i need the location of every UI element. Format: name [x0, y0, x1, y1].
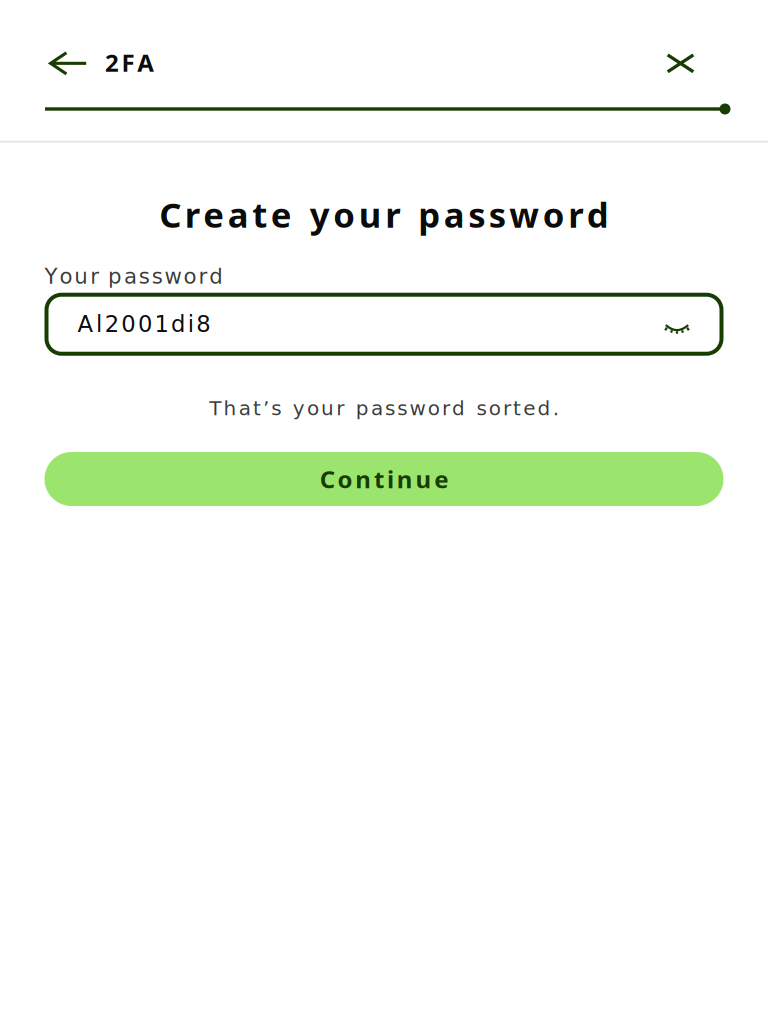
staticText: y [293, 397, 305, 420]
staticText: r [568, 191, 583, 238]
staticText: r [503, 397, 511, 420]
staticText: e [523, 397, 535, 420]
button[interactable]: Show password [650, 305, 689, 344]
staticText: p [108, 264, 122, 289]
staticText: s [476, 397, 486, 420]
staticText: 2 [105, 46, 119, 79]
staticText: r [185, 191, 200, 238]
staticText: e [203, 191, 224, 238]
staticText: d [537, 397, 550, 420]
staticText: r [198, 264, 207, 289]
staticText: h [223, 397, 236, 420]
staticText: n [397, 463, 413, 495]
staticText: e [434, 463, 448, 495]
staticText: 1 [154, 311, 168, 337]
staticText: p [418, 191, 440, 238]
staticText: t [253, 397, 261, 420]
staticText: 0 [121, 311, 135, 337]
staticText: a [124, 264, 137, 289]
staticText: F [122, 46, 135, 79]
staticText: A [137, 46, 154, 79]
staticText: w [509, 191, 539, 238]
staticText: a [228, 191, 249, 238]
staticText: u [321, 397, 334, 420]
staticText: r [336, 397, 344, 420]
staticText: u [415, 463, 431, 495]
staticText: s [397, 397, 407, 420]
staticText: o [543, 191, 565, 238]
staticText: r [442, 397, 450, 420]
staticText: d [587, 191, 609, 238]
staticText: l [96, 311, 102, 337]
staticText: . [553, 397, 559, 420]
staticText: o [183, 264, 196, 289]
staticText: d [209, 264, 223, 289]
staticText: e [271, 191, 292, 238]
staticText: w [409, 397, 425, 420]
staticText: o [333, 191, 355, 238]
staticText: u [359, 191, 382, 238]
staticText: i [387, 463, 394, 495]
staticText: o [428, 397, 440, 420]
staticText: 2 [105, 311, 119, 337]
staticText: p [356, 397, 369, 420]
staticText: d [171, 311, 185, 337]
staticText: t [374, 463, 384, 495]
staticText: n [355, 463, 371, 495]
button[interactable]: Back [49, 46, 97, 80]
staticText: T [209, 397, 221, 420]
staticText: u [74, 264, 88, 289]
button[interactable]: Close [656, 46, 695, 80]
staticText: a [444, 191, 465, 238]
staticText: s [271, 397, 281, 420]
staticText: t [252, 191, 267, 238]
staticText: s [489, 191, 506, 238]
staticText: ’ [263, 397, 269, 420]
staticText: o [337, 463, 352, 495]
staticText: A [77, 311, 93, 337]
staticText: s [152, 264, 163, 289]
staticText: s [139, 264, 150, 289]
staticText: C [159, 191, 181, 238]
staticText: s [385, 397, 395, 420]
staticText: i [188, 311, 194, 337]
staticText: a [371, 397, 383, 420]
staticText: a [239, 397, 251, 420]
staticText: s [468, 191, 485, 238]
button[interactable]: C [44, 452, 723, 506]
staticText: o [489, 397, 501, 420]
staticText: r [385, 191, 400, 238]
staticText: r [90, 264, 99, 289]
staticText: t [513, 397, 521, 420]
staticText: y [310, 191, 330, 238]
staticText: C [320, 463, 335, 495]
staticText: 0 [138, 311, 152, 337]
staticText: d [452, 397, 465, 420]
staticText: o [307, 397, 319, 420]
staticText: Y [44, 264, 57, 289]
staticText: 8 [196, 311, 210, 337]
staticText: o [59, 264, 72, 289]
staticText: w [165, 264, 182, 289]
